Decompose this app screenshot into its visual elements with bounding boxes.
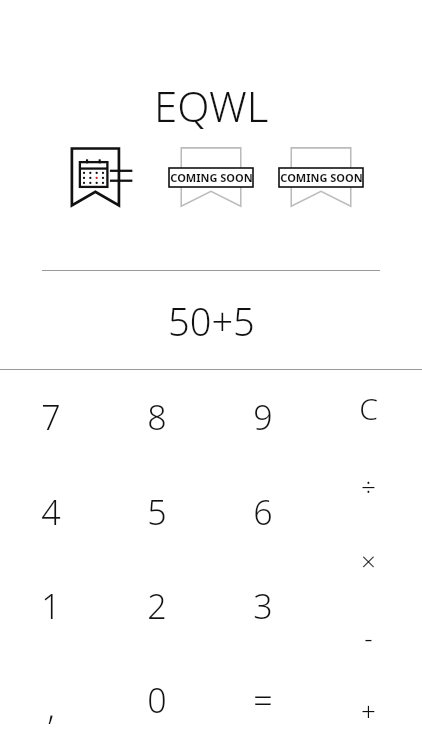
button[interactable]: 1: [8, 562, 94, 650]
button[interactable]: 0: [114, 656, 200, 744]
staticText: =: [253, 677, 273, 723]
button[interactable]: Calendar history: [69, 146, 133, 208]
staticText: ,: [47, 683, 55, 729]
button[interactable]: ,: [8, 662, 94, 750]
button[interactable]: 6: [220, 468, 306, 556]
staticText: 6: [253, 489, 273, 535]
button[interactable]: ÷: [328, 449, 408, 521]
button[interactable]: 7: [8, 373, 94, 461]
staticText: 0: [147, 677, 167, 723]
staticText: COMING SOON: [170, 170, 253, 185]
button[interactable]: Coming soon: [273, 146, 369, 208]
staticText: 1: [41, 583, 61, 629]
button[interactable]: EQWL: [154, 77, 269, 134]
staticText: COMING SOON: [280, 170, 363, 185]
staticText: 5: [147, 489, 167, 535]
staticText: 9: [253, 394, 273, 440]
button[interactable]: 5: [114, 468, 200, 556]
button[interactable]: 4: [8, 468, 94, 556]
button[interactable]: ×: [328, 524, 408, 596]
button[interactable]: +: [328, 674, 408, 746]
staticText: 50+5: [168, 295, 255, 347]
button[interactable]: 2: [114, 562, 200, 650]
button[interactable]: 9: [220, 373, 306, 461]
button[interactable]: C: [328, 372, 408, 444]
staticText: ×: [361, 543, 376, 578]
staticText: 8: [147, 394, 167, 440]
staticText: -: [364, 620, 373, 655]
button[interactable]: 8: [114, 373, 200, 461]
button[interactable]: Coming soon: [163, 146, 259, 208]
staticText: ÷: [361, 468, 376, 503]
staticText: 2: [147, 583, 167, 629]
staticText: C: [359, 388, 378, 429]
staticText: EQWL: [154, 77, 269, 134]
staticText: 4: [41, 489, 61, 535]
staticText: 3: [253, 583, 273, 629]
button[interactable]: -: [328, 601, 408, 673]
button[interactable]: =: [220, 656, 306, 744]
button[interactable]: 3: [220, 562, 306, 650]
staticText: +: [361, 693, 376, 728]
staticText: 7: [41, 394, 61, 440]
